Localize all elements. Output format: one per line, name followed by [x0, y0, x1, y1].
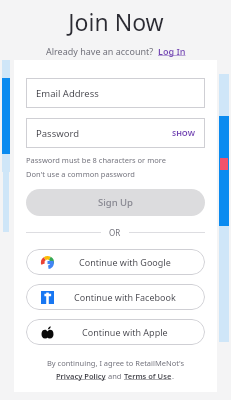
- staticText: Privacy Policy: [56, 371, 106, 381]
- button[interactable]: SHOW: [172, 128, 195, 138]
- staticText: By continuing, I agree to RetailMeNot's: [26, 358, 205, 368]
- staticText: SHOW: [172, 128, 195, 138]
- button[interactable]: Privacy Policy: [56, 371, 106, 381]
- other: Apple: [41, 326, 54, 339]
- staticText: Terms of Use: [124, 371, 172, 381]
- staticText: Don't use a common password: [26, 169, 135, 179]
- other: Facebook: [41, 291, 54, 304]
- staticText: Continue with Google: [79, 256, 171, 268]
- button[interactable]: Terms of Use: [124, 371, 172, 381]
- staticText: and: [106, 371, 124, 381]
- staticText: Password must be 8 characters or more: [26, 155, 166, 165]
- staticText: Log In: [158, 45, 186, 57]
- staticText: Email Address: [36, 87, 99, 100]
- button[interactable]: Facebook: [26, 284, 205, 310]
- other: Google: [41, 256, 54, 269]
- staticText: Already have an account?: [46, 45, 158, 57]
- staticText: Join Now: [68, 6, 164, 37]
- staticText: .: [172, 371, 175, 381]
- button[interactable]: Log In: [158, 45, 186, 57]
- button[interactable]: Google: [26, 249, 205, 275]
- button[interactable]: Apple: [26, 319, 205, 345]
- staticText: Sign Up: [98, 196, 134, 209]
- staticText: OR: [109, 227, 121, 238]
- button[interactable]: Email Address: [26, 78, 205, 108]
- staticText: Continue with Apple: [82, 326, 168, 338]
- staticText: Continue with Facebook: [74, 291, 176, 303]
- button[interactable]: Sign Up: [26, 189, 205, 216]
- button[interactable]: Password: [26, 118, 205, 148]
- staticText: Password: [36, 127, 79, 140]
